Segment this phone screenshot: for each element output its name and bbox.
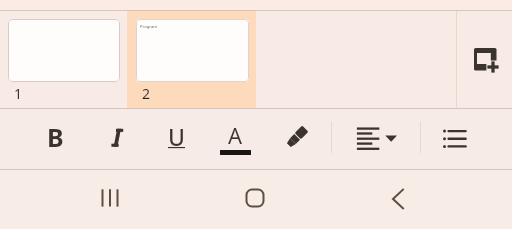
button[interactable]: Back	[372, 173, 424, 225]
other: Highlighter	[282, 122, 312, 152]
button[interactable]: A	[211, 113, 259, 161]
button[interactable]: Add slide	[465, 35, 512, 83]
button[interactable]	[8, 19, 120, 82]
other: Paragraph alignment	[352, 122, 398, 152]
button[interactable]: Program	[136, 19, 249, 82]
other: Bulleted list	[440, 124, 472, 152]
staticText: B	[47, 120, 64, 154]
button[interactable]	[93, 114, 141, 162]
button[interactable]: Recent apps	[84, 172, 136, 224]
button[interactable]	[127, 11, 256, 108]
button[interactable]: Paragraph alignment	[351, 113, 399, 161]
button[interactable]: Bulleted list	[432, 114, 480, 162]
button[interactable]: U	[152, 112, 200, 160]
staticText: 2	[142, 84, 151, 103]
staticText: U	[168, 121, 185, 152]
staticText: 1	[14, 84, 23, 103]
staticText: Program	[140, 24, 158, 30]
button[interactable]: B	[31, 113, 79, 161]
button[interactable]: Home	[229, 172, 281, 224]
button[interactable]: Highlighter	[273, 113, 321, 161]
staticText: A	[228, 120, 243, 150]
